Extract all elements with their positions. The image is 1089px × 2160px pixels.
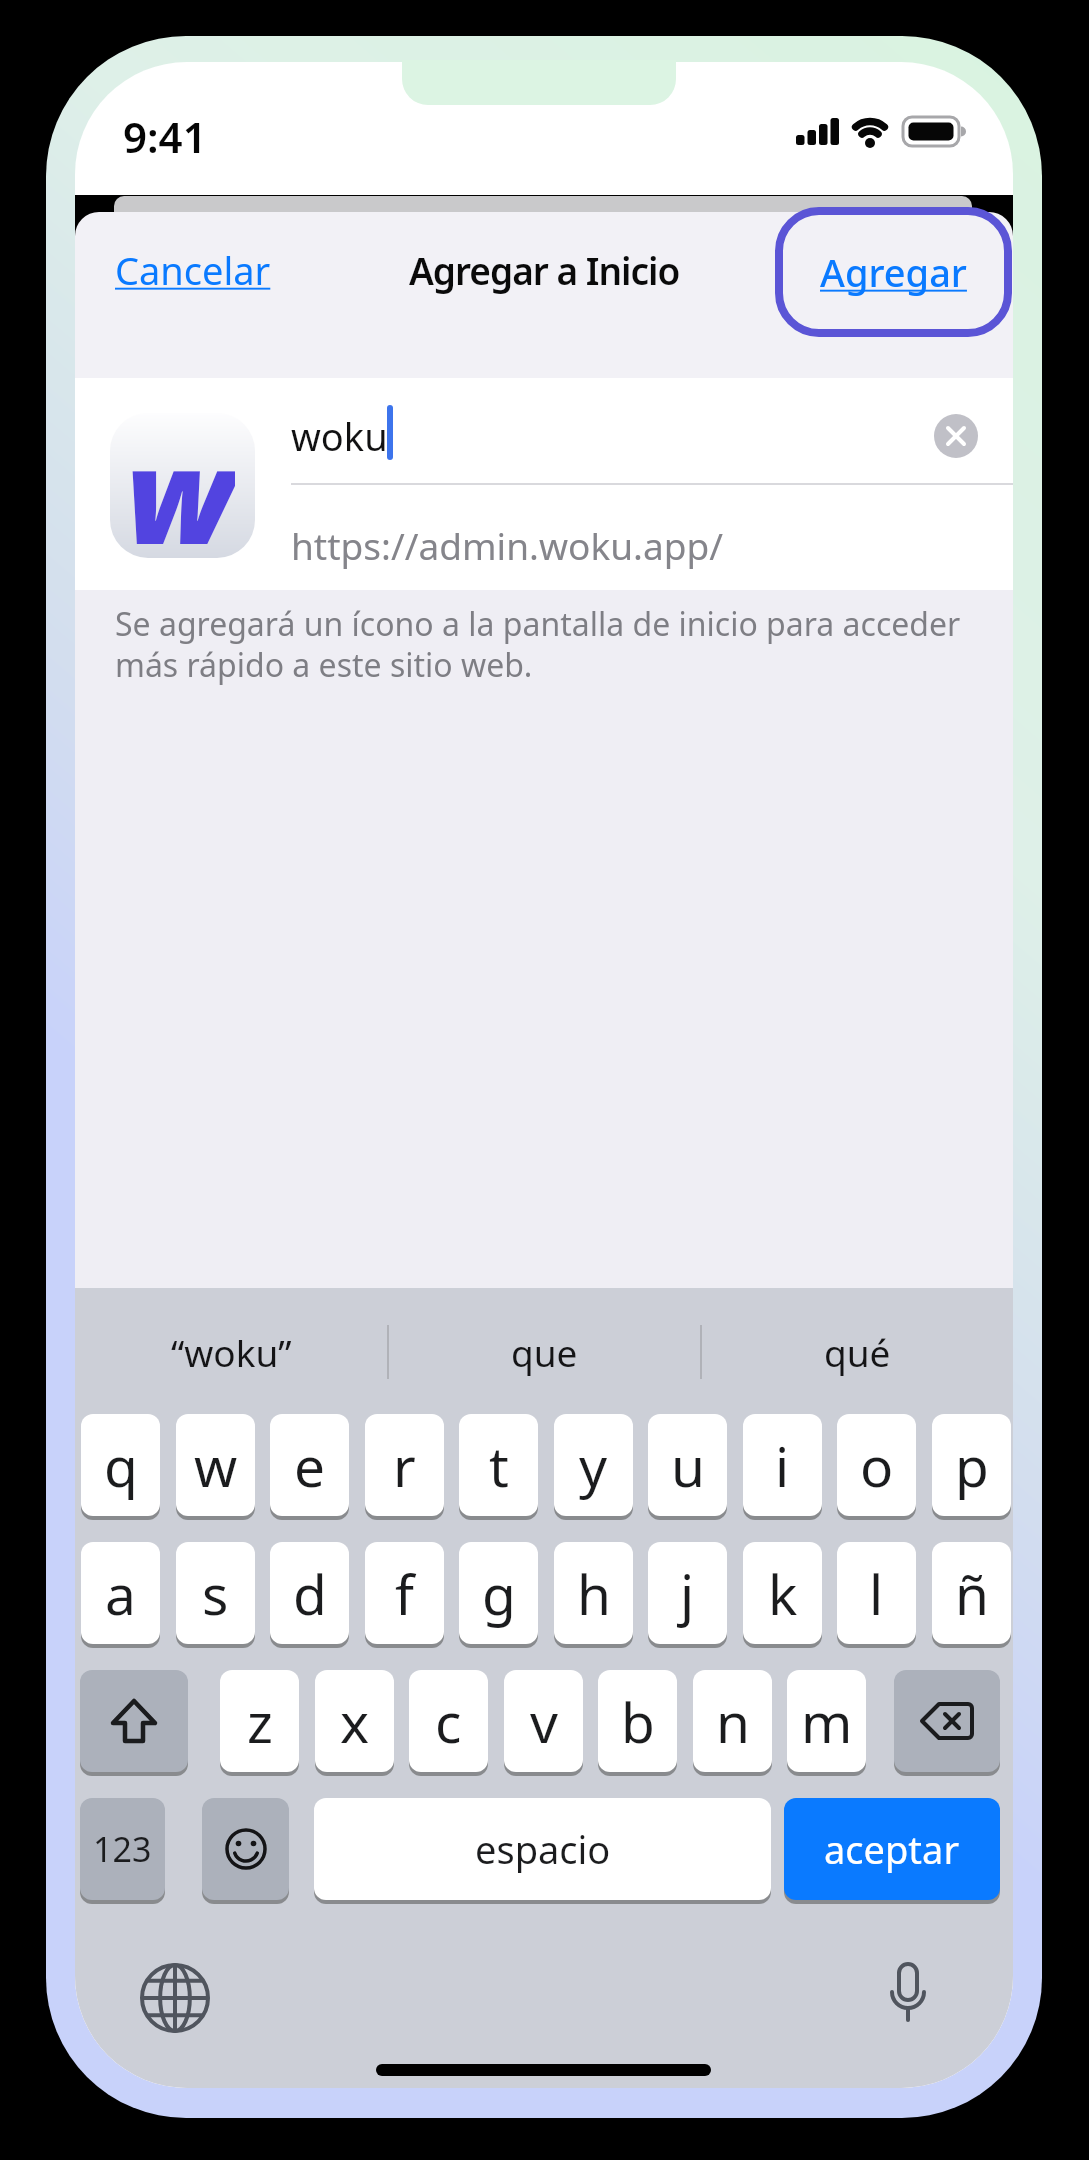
button[interactable]: x bbox=[315, 1670, 394, 1772]
button[interactable]: z bbox=[220, 1670, 299, 1772]
staticText: 9:41 bbox=[123, 108, 207, 165]
staticText: “woku” bbox=[171, 1327, 292, 1377]
button[interactable]: k bbox=[743, 1542, 822, 1644]
staticText: s bbox=[202, 1556, 229, 1631]
staticText: u bbox=[671, 1428, 705, 1503]
button[interactable]: e bbox=[270, 1414, 349, 1516]
button[interactable]: v bbox=[504, 1670, 583, 1772]
staticText: e bbox=[294, 1428, 326, 1503]
button[interactable]: g bbox=[459, 1542, 538, 1644]
staticText: woku bbox=[291, 410, 388, 462]
button[interactable]: i bbox=[743, 1414, 822, 1516]
button[interactable]: l bbox=[837, 1542, 916, 1644]
button[interactable]: h bbox=[554, 1542, 633, 1644]
button[interactable]: a bbox=[81, 1542, 160, 1644]
button[interactable]: qué bbox=[701, 1302, 1013, 1402]
staticText: n bbox=[716, 1684, 750, 1759]
staticText: w bbox=[194, 1428, 238, 1503]
staticText: q bbox=[104, 1428, 138, 1503]
staticText: Agregar bbox=[820, 246, 967, 298]
button[interactable]: Agregar bbox=[775, 207, 1012, 337]
button[interactable]: s bbox=[176, 1542, 255, 1644]
button[interactable]: w bbox=[176, 1414, 255, 1516]
button[interactable]: aceptar bbox=[784, 1798, 1000, 1900]
button[interactable]: j bbox=[648, 1542, 727, 1644]
staticText: w bbox=[126, 413, 235, 548]
staticText: m bbox=[801, 1684, 853, 1759]
button[interactable]: o bbox=[837, 1414, 916, 1516]
staticText: z bbox=[247, 1684, 273, 1759]
staticText: d bbox=[293, 1556, 327, 1631]
button[interactable]: d bbox=[270, 1542, 349, 1644]
staticText: p bbox=[955, 1428, 989, 1503]
staticText: l bbox=[869, 1556, 884, 1631]
staticText: Se agregará un ícono a la pantalla de in… bbox=[115, 602, 961, 687]
staticText: https://admin.woku.app/ bbox=[291, 520, 723, 570]
staticText: j bbox=[680, 1556, 695, 1631]
staticText: b bbox=[621, 1684, 655, 1759]
button[interactable]: m bbox=[787, 1670, 866, 1772]
button[interactable]: t bbox=[459, 1414, 538, 1516]
staticText: que bbox=[511, 1327, 578, 1377]
staticText: 123 bbox=[93, 1826, 152, 1872]
button[interactable]: r bbox=[365, 1414, 444, 1516]
button[interactable] bbox=[80, 1670, 188, 1772]
staticText: g bbox=[482, 1556, 516, 1631]
button[interactable] bbox=[202, 1798, 289, 1900]
staticText: v bbox=[530, 1684, 558, 1759]
button[interactable]: espacio bbox=[314, 1798, 771, 1900]
button[interactable] bbox=[872, 1960, 944, 2036]
staticText: qué bbox=[824, 1327, 891, 1377]
button[interactable]: “woku” bbox=[75, 1302, 387, 1402]
button[interactable]: b bbox=[598, 1670, 677, 1772]
staticText: aceptar bbox=[824, 1823, 960, 1875]
button[interactable]: y bbox=[554, 1414, 633, 1516]
button[interactable]: p bbox=[932, 1414, 1011, 1516]
staticText: t bbox=[489, 1428, 509, 1503]
staticText: r bbox=[393, 1428, 416, 1503]
button[interactable]: Cancelar bbox=[115, 244, 271, 296]
staticText: i bbox=[775, 1428, 790, 1503]
button[interactable] bbox=[934, 414, 978, 458]
staticText: Cancelar bbox=[115, 244, 271, 296]
staticText: y bbox=[579, 1428, 608, 1503]
button[interactable]: f bbox=[365, 1542, 444, 1644]
staticText: f bbox=[395, 1556, 414, 1631]
button[interactable]: q bbox=[81, 1414, 160, 1516]
staticText: k bbox=[768, 1556, 798, 1631]
staticText: h bbox=[577, 1556, 611, 1631]
staticText: c bbox=[435, 1684, 462, 1759]
button[interactable]: ñ bbox=[932, 1542, 1011, 1644]
staticText: o bbox=[860, 1428, 894, 1503]
staticText: Agregar a Inicio bbox=[409, 245, 680, 295]
staticText: a bbox=[105, 1556, 136, 1631]
button[interactable] bbox=[139, 1962, 211, 2034]
button[interactable]: 123 bbox=[80, 1798, 165, 1900]
button[interactable] bbox=[894, 1670, 1000, 1772]
staticText: espacio bbox=[475, 1823, 611, 1875]
button[interactable]: c bbox=[409, 1670, 488, 1772]
button[interactable]: que bbox=[388, 1302, 700, 1402]
staticText: ñ bbox=[955, 1556, 989, 1631]
button[interactable]: u bbox=[648, 1414, 727, 1516]
staticText: x bbox=[340, 1684, 370, 1759]
button[interactable]: n bbox=[693, 1670, 772, 1772]
